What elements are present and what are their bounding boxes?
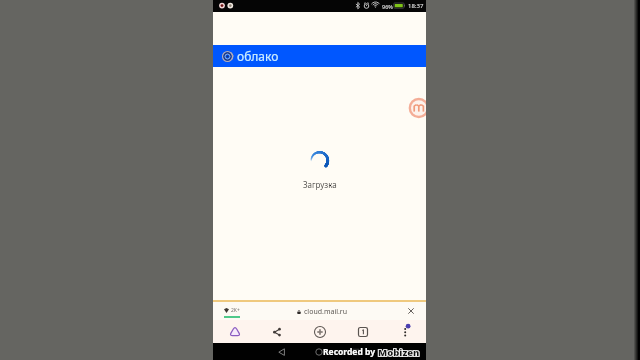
button[interactable]: облако — [213, 45, 426, 67]
staticText: Recorded by — [323, 346, 376, 358]
button[interactable]: Recent apps — [349, 345, 363, 359]
button[interactable]: Back — [275, 345, 289, 359]
staticText: 2K+ — [231, 307, 240, 314]
button[interactable]: Home — [312, 345, 326, 359]
staticText: Mobizen — [378, 346, 420, 359]
staticText: Загрузка — [303, 179, 337, 190]
button[interactable]: Share — [255, 320, 297, 343]
staticText: облако — [237, 48, 279, 64]
button[interactable]: Tabs — [340, 320, 383, 343]
button[interactable]: Home — [213, 320, 255, 343]
staticText: 96% — [382, 3, 393, 10]
staticText: 18:37 — [408, 2, 424, 10]
staticText: Mobizen — [378, 346, 420, 359]
button[interactable]: Add — [297, 320, 340, 343]
button[interactable]: Menu — [383, 320, 426, 343]
button[interactable]: Close — [405, 305, 417, 317]
button[interactable]: Ads blocked — [224, 307, 240, 318]
staticText: cloud.mail.ru — [304, 307, 348, 317]
